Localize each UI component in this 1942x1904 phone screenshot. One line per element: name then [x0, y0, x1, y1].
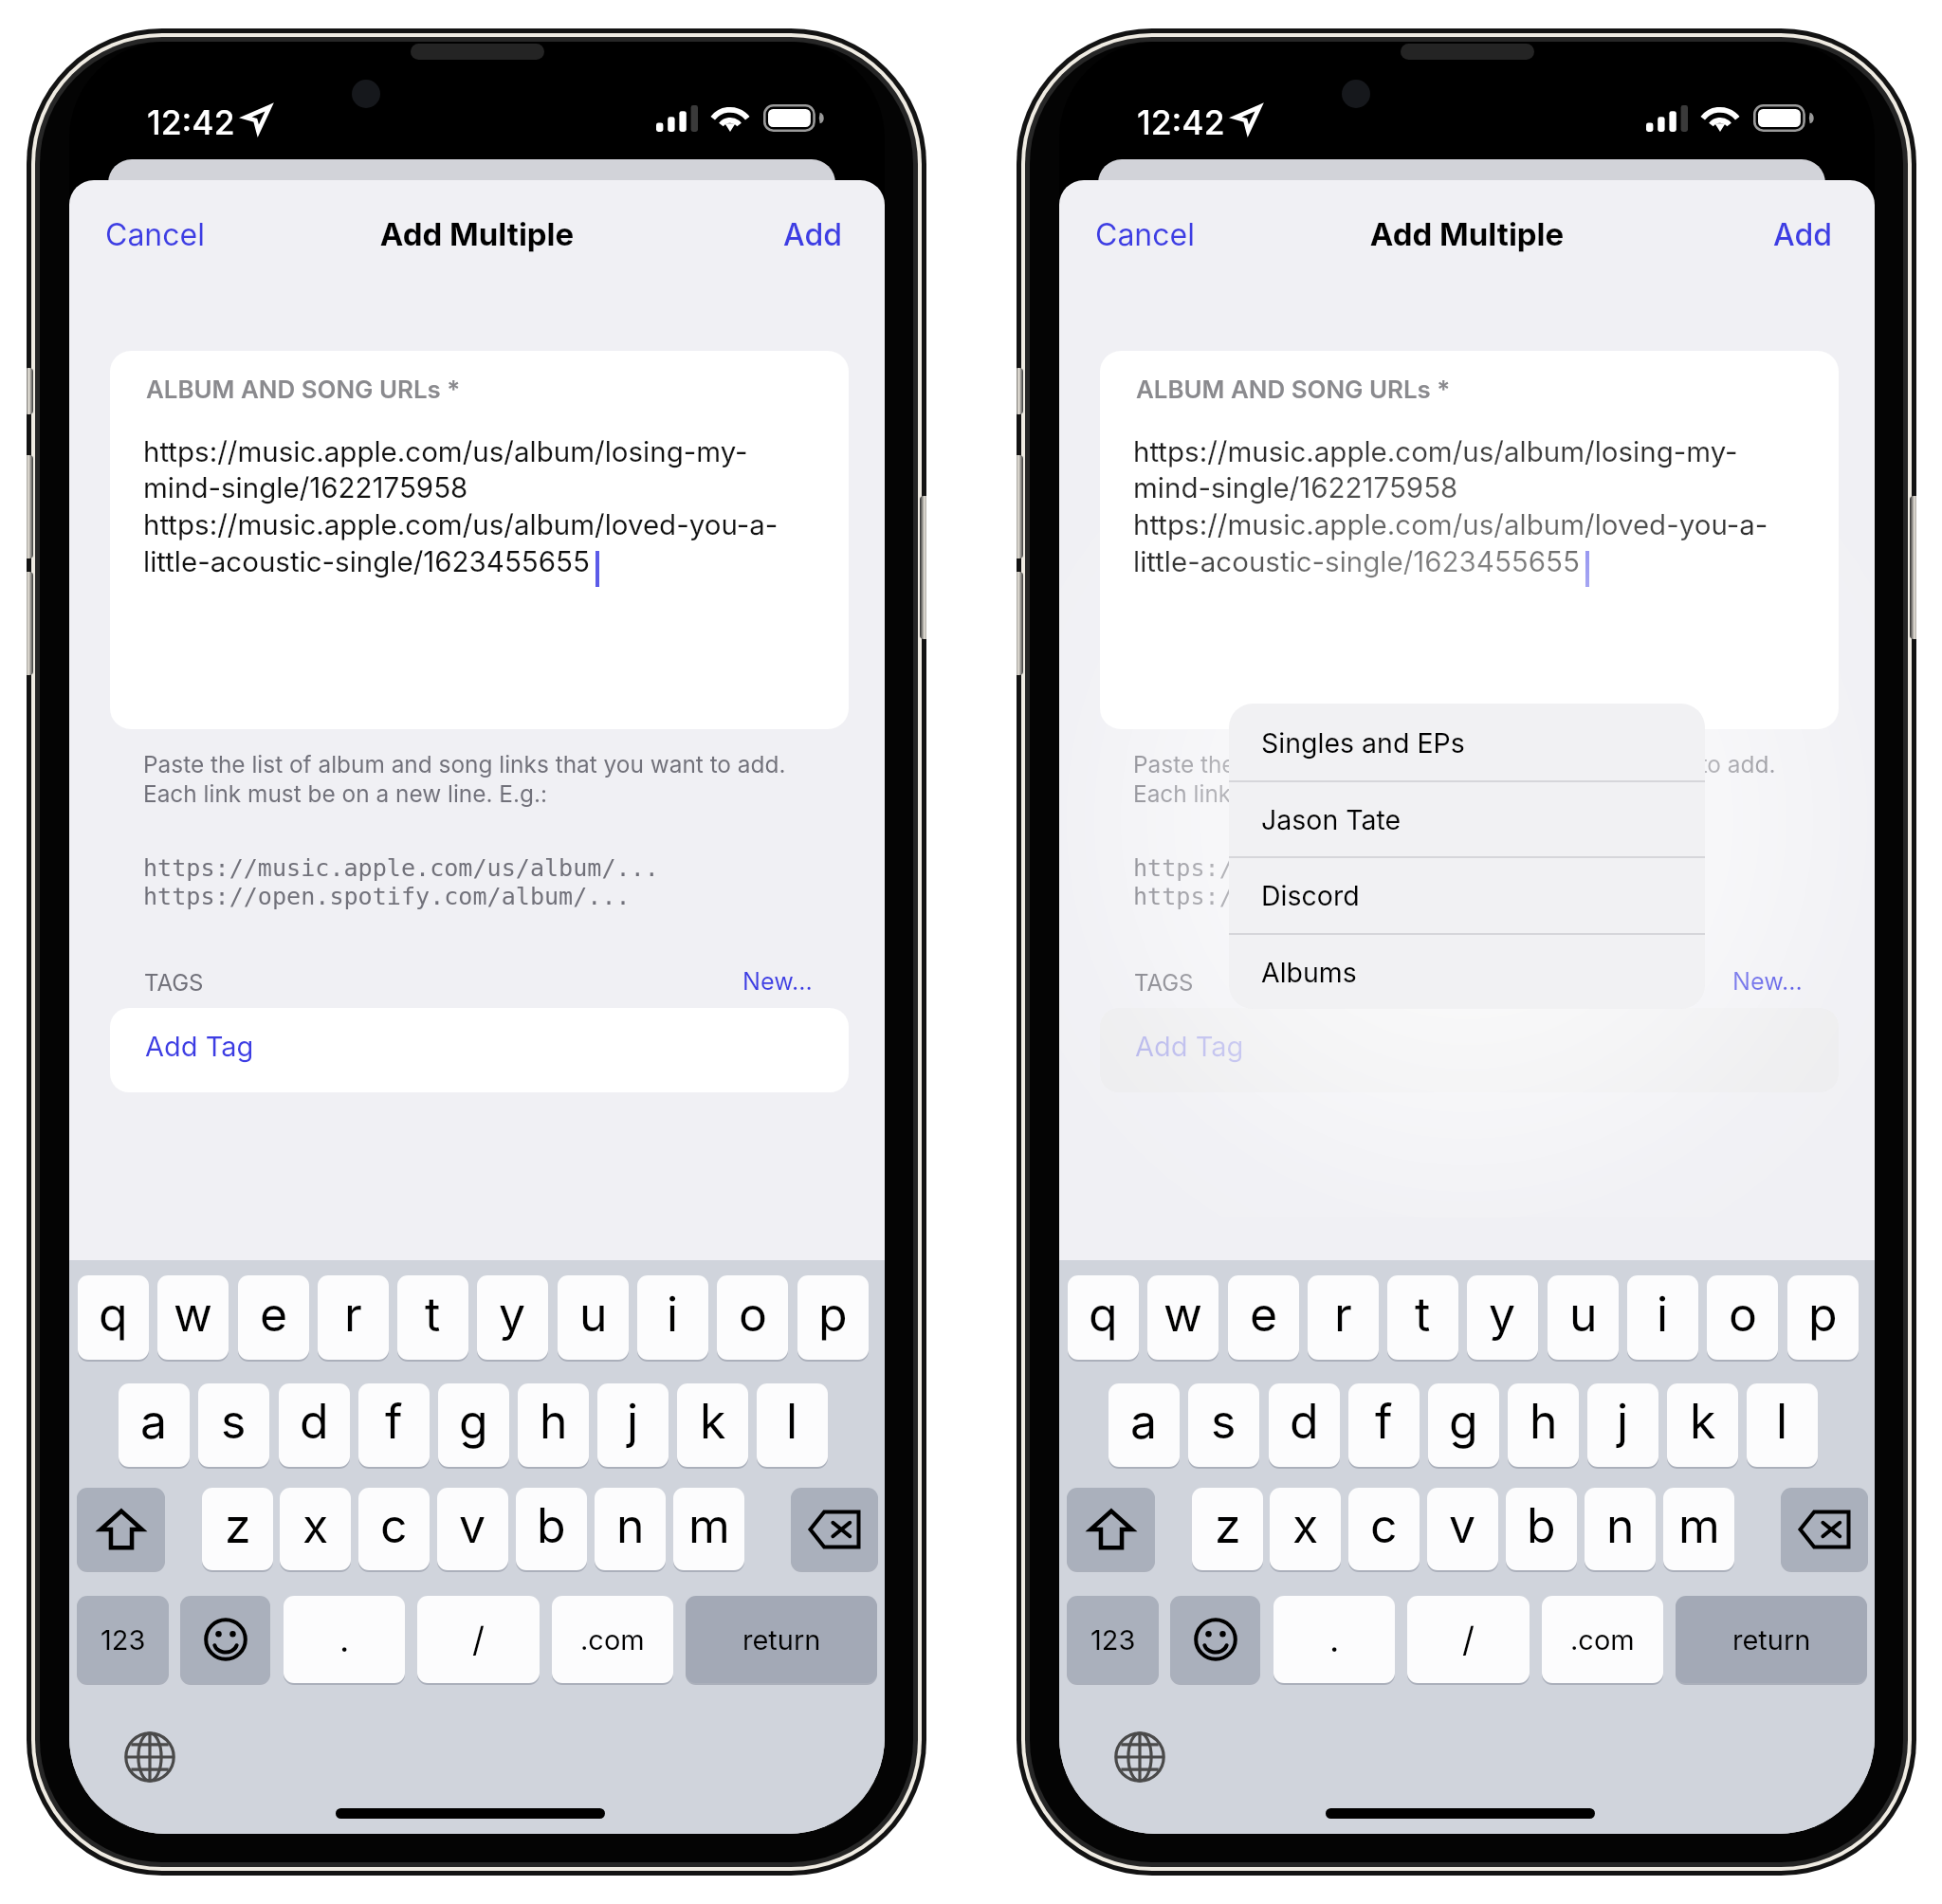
button[interactable]: y [477, 1275, 548, 1360]
button[interactable]: k [677, 1383, 748, 1467]
button[interactable]: New... [742, 967, 813, 996]
button[interactable]: e [238, 1275, 309, 1360]
button[interactable]: 123 [77, 1596, 169, 1683]
button[interactable]: i [637, 1275, 708, 1360]
button[interactable]: o [717, 1275, 788, 1360]
staticText: p [1808, 1286, 1838, 1343]
button[interactable]: Shift [1067, 1488, 1155, 1570]
button[interactable]: x [1270, 1488, 1341, 1570]
button[interactable]: . [1273, 1596, 1395, 1683]
button[interactable]: y [1467, 1275, 1538, 1360]
button[interactable]: g [1428, 1383, 1499, 1467]
staticText: a [1130, 1393, 1158, 1450]
button[interactable]: o [1707, 1275, 1778, 1360]
button[interactable]: ALBUM AND SONG URLs * [1100, 351, 1839, 729]
staticText: z [1215, 1497, 1241, 1554]
button[interactable]: r [1308, 1275, 1379, 1360]
button[interactable]: s [198, 1383, 269, 1467]
staticText: New... [742, 967, 813, 996]
button[interactable]: f [358, 1383, 430, 1467]
button[interactable]: . [284, 1596, 405, 1683]
button[interactable]: .com [1542, 1596, 1663, 1683]
button[interactable]: / [417, 1596, 540, 1683]
button[interactable]: c [1348, 1488, 1420, 1570]
button[interactable]: v [437, 1488, 508, 1570]
staticText: Paste the list of album and song links t… [143, 750, 786, 808]
button[interactable]: Shift [77, 1488, 165, 1570]
button[interactable]: e [1228, 1275, 1299, 1360]
staticText: n [616, 1497, 645, 1554]
button[interactable]: n [595, 1488, 666, 1570]
button[interactable]: Change keyboard [124, 1731, 175, 1783]
button[interactable]: r [318, 1275, 389, 1360]
button[interactable]: l [757, 1383, 828, 1467]
button[interactable]: f [1348, 1383, 1420, 1467]
button[interactable]: Backspace [1781, 1488, 1868, 1570]
button[interactable]: b [516, 1488, 587, 1570]
button[interactable]: c [358, 1488, 430, 1570]
button[interactable]: Emoji [1170, 1596, 1260, 1683]
button[interactable]: w [157, 1275, 229, 1360]
button[interactable]: .com [552, 1596, 673, 1683]
button[interactable]: l [1747, 1383, 1818, 1467]
button[interactable]: v [1427, 1488, 1498, 1570]
button[interactable]: return [686, 1596, 877, 1683]
button[interactable]: q [1068, 1275, 1139, 1360]
button[interactable]: j [597, 1383, 669, 1467]
button[interactable]: g [438, 1383, 509, 1467]
button[interactable]: z [1192, 1488, 1263, 1570]
button[interactable]: Emoji [180, 1596, 270, 1683]
button[interactable]: h [1508, 1383, 1579, 1467]
button[interactable]: Albums [1229, 933, 1705, 1009]
staticText: f [1375, 1393, 1393, 1450]
button[interactable]: t [397, 1275, 468, 1360]
button[interactable]: t [1387, 1275, 1458, 1360]
button[interactable]: Change keyboard [1114, 1731, 1165, 1783]
button[interactable]: ALBUM AND SONG URLs * [110, 351, 849, 729]
button[interactable]: Cancel [1095, 216, 1195, 253]
button[interactable]: k [1667, 1383, 1738, 1467]
button[interactable]: Add Tag [1100, 1008, 1839, 1092]
button[interactable]: u [1548, 1275, 1619, 1360]
button[interactable]: Jason Tate [1229, 780, 1705, 857]
staticText: x [1292, 1497, 1319, 1554]
button[interactable]: b [1506, 1488, 1577, 1570]
button[interactable]: i [1627, 1275, 1698, 1360]
staticText: b [1527, 1497, 1556, 1554]
button[interactable]: Singles and EPs [1229, 704, 1705, 780]
staticText: t [1415, 1286, 1431, 1343]
button[interactable]: Cancel [105, 216, 205, 253]
button[interactable]: d [1269, 1383, 1340, 1467]
button[interactable]: Discord [1229, 856, 1705, 933]
button[interactable]: Add [783, 216, 842, 253]
button[interactable]: d [279, 1383, 350, 1467]
button[interactable]: return [1676, 1596, 1867, 1683]
button[interactable]: m [673, 1488, 744, 1570]
staticText: https://music.apple.com/us/album/losing-… [1133, 434, 1768, 578]
button[interactable]: p [1787, 1275, 1859, 1360]
staticText: Paste the list of album and song links t… [1133, 750, 1776, 808]
staticText: g [1449, 1393, 1478, 1450]
button[interactable]: / [1407, 1596, 1530, 1683]
button[interactable]: s [1188, 1383, 1259, 1467]
staticText: l [786, 1393, 798, 1450]
button[interactable]: u [558, 1275, 629, 1360]
button[interactable]: Add Tag [110, 1008, 849, 1092]
button[interactable]: p [797, 1275, 869, 1360]
button[interactable]: z [202, 1488, 273, 1570]
button[interactable]: w [1147, 1275, 1218, 1360]
button[interactable]: New... [1732, 967, 1803, 996]
staticText: https://music.apple.com/us/album/losing-… [143, 434, 779, 578]
button[interactable]: 123 [1067, 1596, 1159, 1683]
button[interactable]: q [78, 1275, 149, 1360]
button[interactable]: a [119, 1383, 190, 1467]
button[interactable]: x [280, 1488, 351, 1570]
button[interactable]: m [1663, 1488, 1734, 1570]
button[interactable]: Backspace [791, 1488, 878, 1570]
button[interactable]: n [1585, 1488, 1656, 1570]
button[interactable]: j [1587, 1383, 1658, 1467]
button[interactable]: Add [1773, 216, 1832, 253]
button[interactable]: h [518, 1383, 589, 1467]
staticText: w [1163, 1286, 1202, 1343]
button[interactable]: a [1108, 1383, 1180, 1467]
